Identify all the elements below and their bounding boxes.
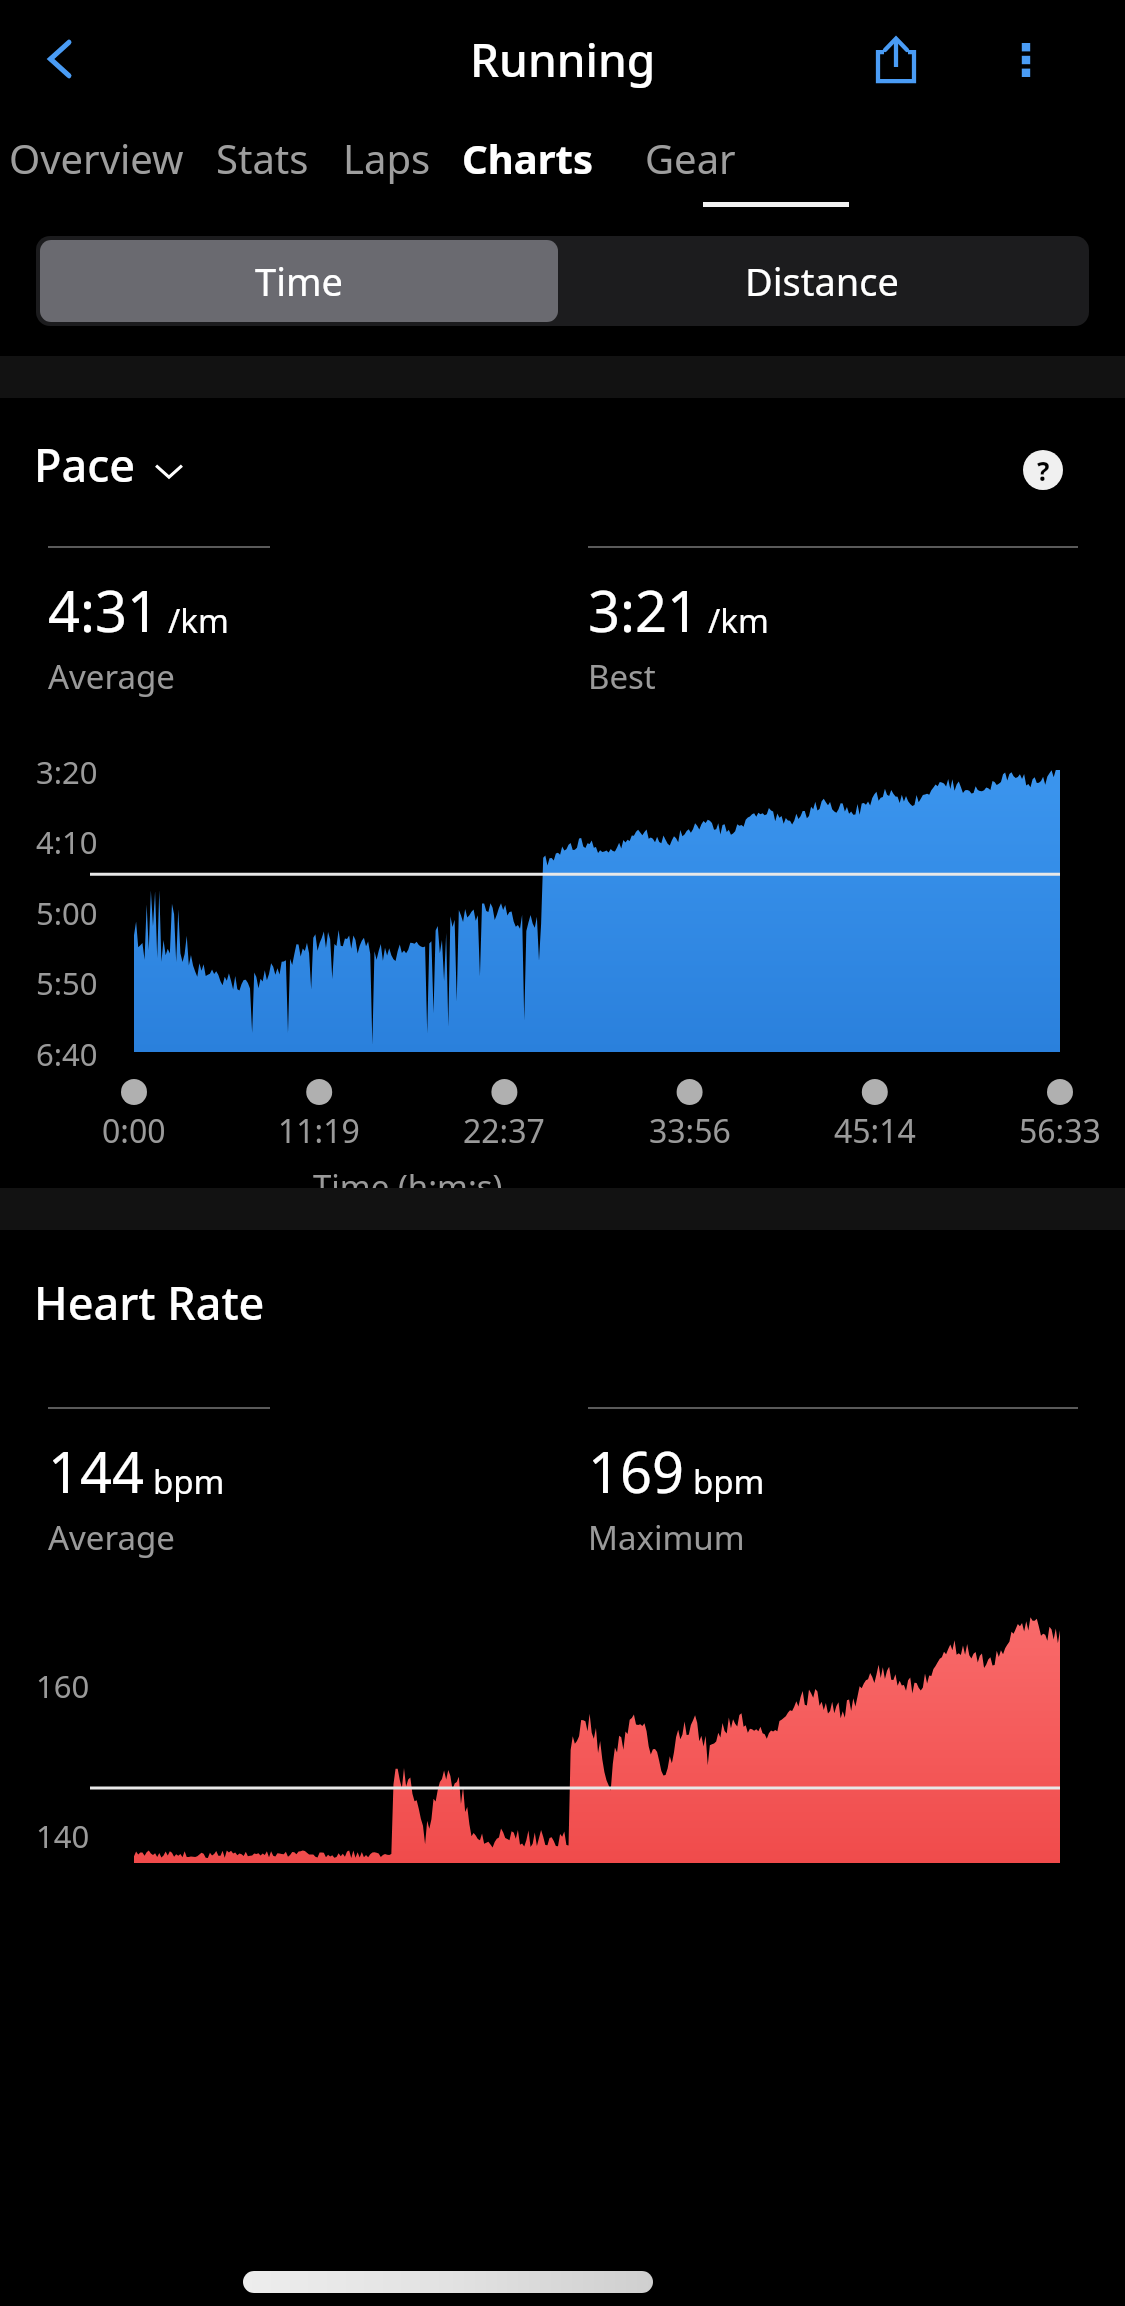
button[interactable]: Pace [34,434,186,495]
staticText: 3:21 [588,572,700,648]
button[interactable]: Overview [0,118,210,218]
staticText: 33:56 [649,1109,731,1153]
staticText: /km [168,598,229,643]
staticText: 5:00 [36,892,98,934]
staticText: 11:19 [278,1109,360,1153]
button[interactable]: More options [985,18,1067,100]
staticText: bpm [153,1459,225,1504]
staticText: Time [255,255,343,307]
staticText: Overview [9,131,184,185]
staticText: Average [48,654,175,699]
staticText: 5:50 [36,962,98,1004]
staticText: 4:31 [48,572,160,648]
staticText: Best [588,654,656,699]
staticText: Pace [34,434,136,495]
staticText: Time (h:m:s) [313,1164,503,1209]
staticText: 56:33 [1019,1109,1101,1153]
staticText: Charts [462,131,593,185]
staticText: Laps [343,131,431,185]
staticText: 3:20 [36,751,98,793]
staticText: 6:40 [36,1033,98,1075]
staticText: 45:14 [834,1109,916,1153]
staticText: 0:00 [102,1109,166,1153]
staticText: Heart Rate [34,1272,265,1333]
button[interactable]: Help [1002,433,1084,507]
staticText: Maximum [588,1515,745,1560]
staticText: 4:10 [36,821,98,863]
staticText: 160 [36,1665,90,1707]
button[interactable]: Stats [183,118,342,218]
button[interactable]: Back [20,18,102,100]
staticText: Gear [645,131,736,185]
staticText: 144 [48,1433,145,1509]
staticText: /km [708,598,769,643]
button[interactable]: Gear [622,118,758,218]
staticText: 140 [36,1815,90,1857]
staticText: Stats [216,131,309,185]
staticText: Running [470,28,656,91]
staticText: Distance [745,255,899,307]
button[interactable]: Distance [558,236,1085,326]
button[interactable]: Laps [319,118,455,218]
button[interactable]: Time [40,240,558,322]
staticText: 22:37 [463,1109,545,1153]
staticText: ? [1037,453,1050,488]
button[interactable]: Charts [436,118,618,218]
staticText: bpm [693,1459,765,1504]
button[interactable]: Share [855,18,937,100]
staticText: Average [48,1515,175,1560]
staticText: 169 [588,1433,685,1509]
